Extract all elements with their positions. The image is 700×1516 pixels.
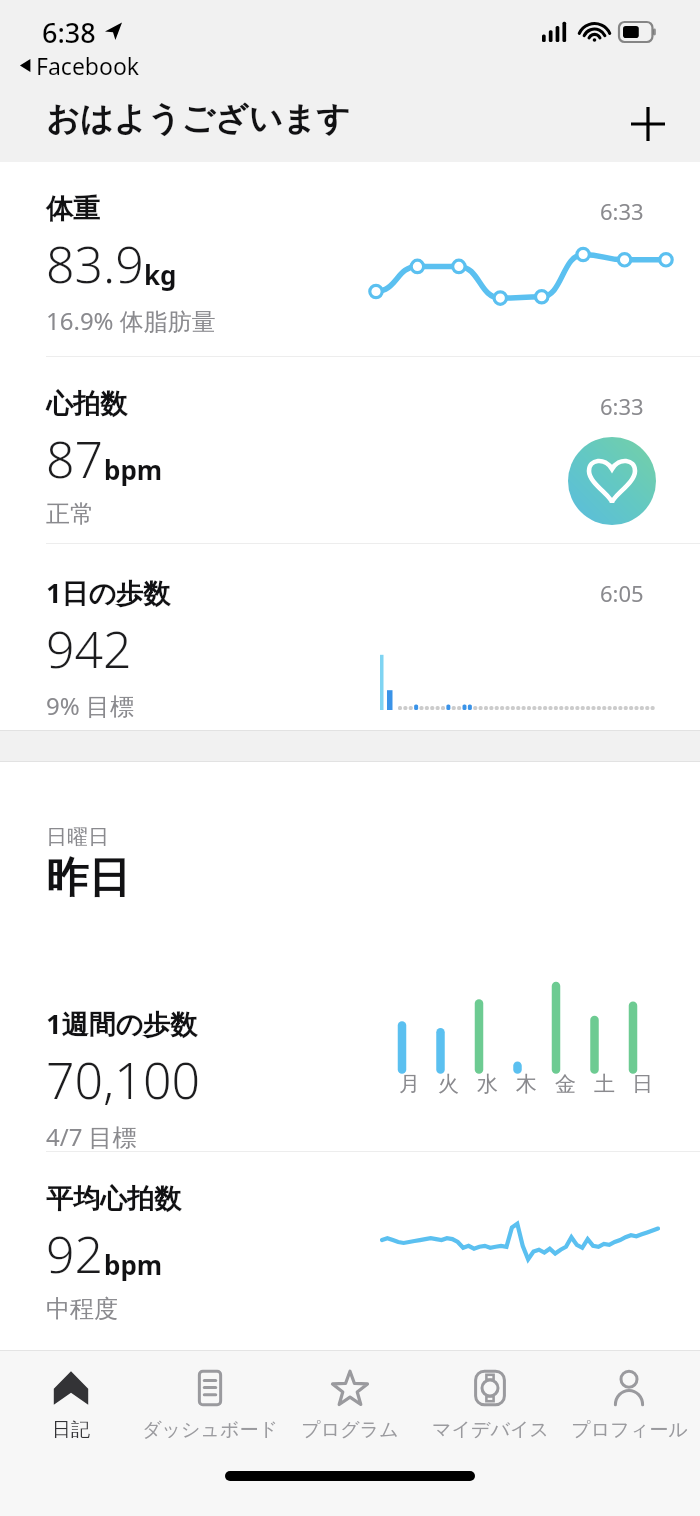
button[interactable]: プロフィール	[560, 1351, 698, 1442]
staticText: Facebook	[36, 50, 140, 81]
staticText: 木	[516, 1071, 537, 1097]
staticText: bpm	[104, 1247, 163, 1282]
staticText: 6:33	[600, 391, 644, 421]
staticText: プロフィール	[571, 1418, 688, 1442]
staticText: 心拍数	[46, 387, 127, 421]
staticText: 火	[438, 1071, 459, 1097]
button[interactable]: 平均心拍数	[0, 1152, 700, 1328]
staticText: 正常	[46, 499, 94, 529]
staticText: 月	[399, 1071, 420, 1097]
staticText: bpm	[104, 452, 163, 487]
staticText: 6:33	[600, 196, 644, 226]
button[interactable]: プログラム	[281, 1351, 419, 1442]
staticText: ダッシュボード	[142, 1418, 278, 1442]
staticText: 942	[46, 615, 132, 683]
staticText: おはようございます	[46, 98, 350, 140]
staticText: 1日の歩数	[46, 574, 171, 611]
staticText: 水	[477, 1071, 498, 1097]
staticText: 16.9% 体脂肪量	[46, 304, 216, 337]
button[interactable]: 心拍数	[0, 357, 700, 543]
button[interactable]: Heart rate	[568, 437, 656, 525]
staticText: 70,100	[46, 1046, 200, 1114]
staticText: 日記	[52, 1418, 90, 1442]
staticText: 日曜日	[46, 824, 109, 850]
button[interactable]: 体重	[0, 162, 700, 356]
staticText: 中程度	[46, 1294, 118, 1324]
staticText: 土	[594, 1071, 615, 1097]
staticText: 87	[46, 425, 104, 493]
button[interactable]: マイデバイス	[421, 1351, 559, 1442]
staticText: 9% 目標	[46, 689, 134, 722]
button[interactable]: 日記	[2, 1351, 140, 1442]
staticText: プログラム	[301, 1418, 399, 1442]
staticText: 1週間の歩数	[46, 1005, 198, 1042]
staticText: 4/7 目標	[46, 1120, 137, 1153]
staticText: 83.9	[46, 230, 144, 298]
staticText: 金	[555, 1071, 576, 1097]
staticText: 92	[46, 1220, 104, 1288]
button[interactable]: Add	[614, 90, 682, 158]
staticText: 6:38	[42, 14, 96, 51]
staticText: 体重	[46, 192, 100, 226]
button[interactable]: 1週間の歩数	[0, 975, 700, 1151]
staticText: 6:05	[600, 578, 644, 608]
staticText: 日	[632, 1071, 653, 1097]
staticText: 平均心拍数	[46, 1182, 181, 1216]
staticText: 昨日	[46, 852, 130, 905]
button[interactable]: 1日の歩数	[0, 544, 700, 730]
button[interactable]: ダッシュボード	[141, 1351, 279, 1442]
button[interactable]: Facebook	[14, 48, 144, 83]
staticText: マイデバイス	[432, 1418, 549, 1442]
staticText: kg	[144, 257, 177, 292]
